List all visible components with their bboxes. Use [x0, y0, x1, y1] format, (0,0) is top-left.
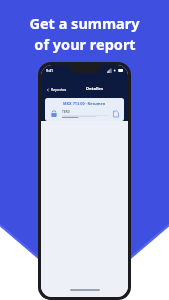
- staticText: Detalles: [86, 86, 103, 92]
- staticText: Reportes: [51, 87, 67, 92]
- button[interactable]: MXX 713.00 · Resumen: [45, 98, 124, 121]
- staticText: of your report: [34, 34, 136, 54]
- button[interactable]: Open document: [112, 110, 120, 118]
- button[interactable]: Detalles: [84, 86, 105, 92]
- other: Secure: [49, 110, 59, 118]
- button[interactable]: Reportes: [45, 87, 68, 92]
- staticText: Get a summary: [29, 13, 140, 33]
- staticText: TERD: [62, 110, 70, 114]
- staticText: MXX 713.00 · Resumen: [63, 101, 106, 106]
- staticText: 9:41: [46, 68, 54, 73]
